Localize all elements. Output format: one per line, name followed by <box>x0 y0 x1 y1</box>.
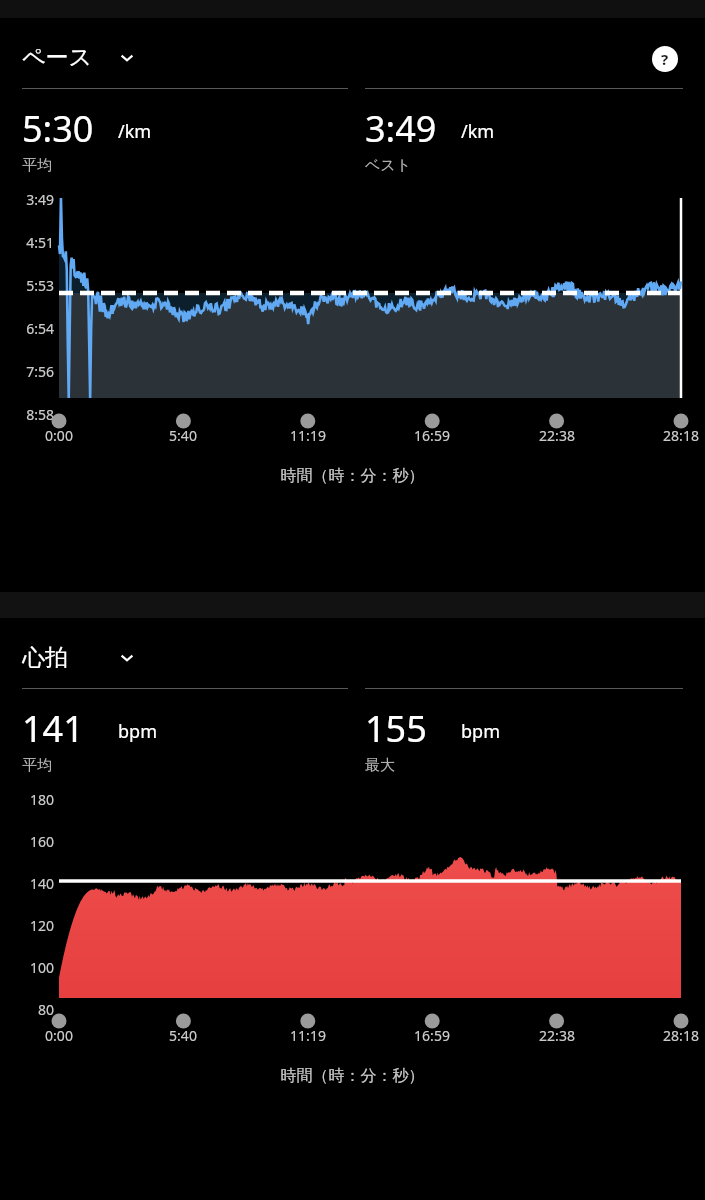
staticText: ベスト <box>365 156 412 175</box>
staticText: 平均 <box>22 156 52 175</box>
staticText: 4:51 <box>14 233 54 252</box>
staticText: 5:40 <box>138 1026 228 1045</box>
staticText: 3:49 <box>365 104 437 148</box>
staticText: /km <box>118 119 152 144</box>
staticText: bpm <box>118 719 157 744</box>
staticText: 28:18 <box>636 1026 705 1045</box>
staticText: 心拍 <box>22 643 68 672</box>
staticText: ? <box>661 49 669 69</box>
staticText: 16:59 <box>387 426 477 445</box>
staticText: 時間（時：分：秒） <box>0 466 705 486</box>
staticText: bpm <box>461 719 500 744</box>
staticText: 120 <box>14 916 54 935</box>
staticText: ペース <box>22 43 93 72</box>
staticText: 6:54 <box>14 319 54 338</box>
staticText: 時間（時：分：秒） <box>0 1066 705 1086</box>
staticText: 11:19 <box>263 426 353 445</box>
staticText: 141 <box>22 704 84 748</box>
staticText: 155 <box>365 704 427 748</box>
staticText: 11:19 <box>263 1026 353 1045</box>
staticText: /km <box>461 119 495 144</box>
staticText: 22:38 <box>512 426 602 445</box>
staticText: 140 <box>14 874 54 893</box>
staticText: 0:00 <box>14 426 104 445</box>
staticText: 5:53 <box>14 276 54 295</box>
staticText: 3:49 <box>14 190 54 209</box>
staticText: 160 <box>14 832 54 851</box>
staticText: 7:56 <box>14 362 54 381</box>
staticText: 28:18 <box>636 426 705 445</box>
staticText: 80 <box>14 1000 54 1019</box>
staticText: 平均 <box>22 756 52 775</box>
button[interactable]: Help <box>648 42 682 76</box>
staticText: 16:59 <box>387 1026 477 1045</box>
staticText: 22:38 <box>512 1026 602 1045</box>
button[interactable]: ペース <box>22 38 192 76</box>
staticText: 0:00 <box>14 1026 104 1045</box>
button[interactable]: 心拍 <box>22 638 192 676</box>
staticText: 180 <box>14 790 54 809</box>
staticText: 8:58 <box>14 405 54 424</box>
staticText: 100 <box>14 958 54 977</box>
staticText: 5:40 <box>138 426 228 445</box>
staticText: 最大 <box>365 756 395 775</box>
staticText: 5:30 <box>22 104 94 148</box>
